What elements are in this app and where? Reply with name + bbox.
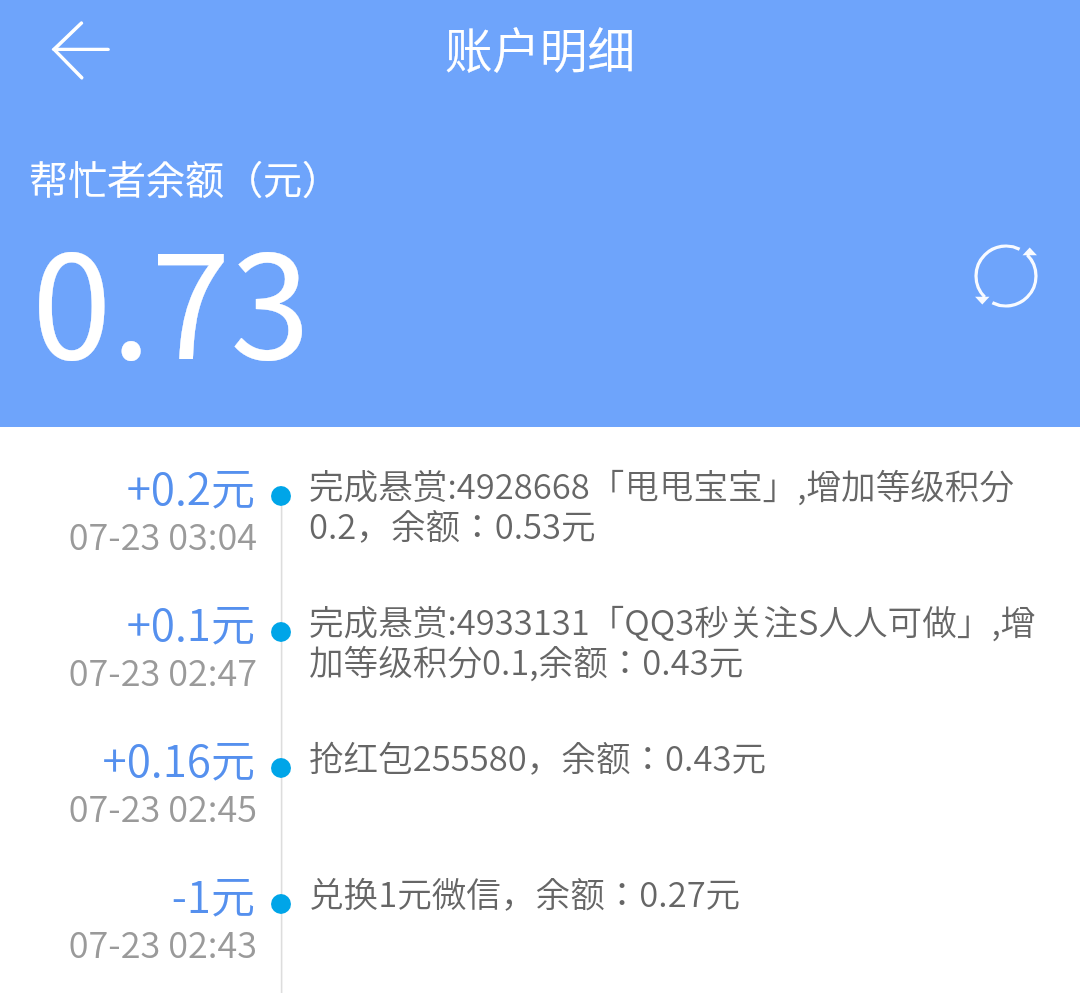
- staticText: 完成悬赏:4928668「甩甩宝宝」,增加等级积分0.2，余额：0.53元: [309, 459, 1054, 549]
- staticText: 抢红包255580，余额：0.43元: [309, 731, 1054, 781]
- staticText: 07-23 03:04: [0, 508, 257, 560]
- staticText: +0.2元: [0, 454, 255, 518]
- staticText: 完成悬赏:4933131「QQ3秒关注S人人可做」,增加等级积分0.1,余额：0…: [309, 595, 1054, 685]
- button[interactable]: +0.2元: [0, 427, 1080, 563]
- staticText: 07-23 02:45: [0, 780, 257, 832]
- staticText: +0.16元: [0, 726, 255, 790]
- button[interactable]: -1元: [0, 835, 1080, 971]
- staticText: 账户明细: [445, 13, 635, 82]
- staticText: 帮忙者余额（元）: [29, 149, 342, 205]
- staticText: 07-23 02:47: [0, 644, 257, 696]
- staticText: 07-23 02:43: [0, 916, 257, 968]
- staticText: -1元: [0, 862, 255, 926]
- button[interactable]: +0.1元: [0, 563, 1080, 699]
- staticText: 兑换1元微信，余额：0.27元: [309, 867, 1054, 917]
- staticText: +0.1元: [0, 590, 255, 654]
- staticText: 0.73: [32, 193, 310, 400]
- button[interactable]: Back: [10, 0, 150, 100]
- button[interactable]: Refresh: [956, 226, 1056, 326]
- button[interactable]: +0.16元: [0, 699, 1080, 835]
